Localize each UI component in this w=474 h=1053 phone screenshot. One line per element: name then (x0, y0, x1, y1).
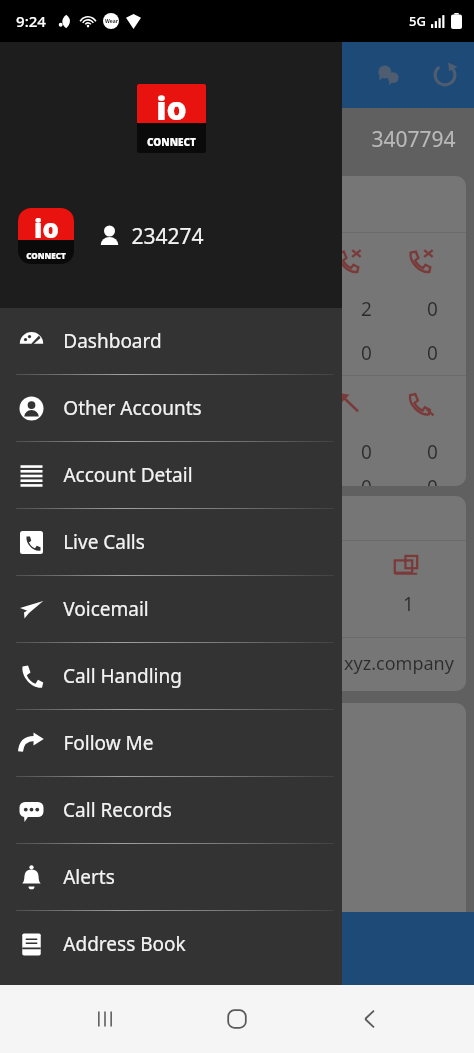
button[interactable]: Call Records (0, 777, 342, 843)
staticText: Wear (105, 18, 118, 25)
staticText: 1 (403, 591, 414, 617)
button[interactable]: Address Book (0, 911, 342, 977)
staticText: 0 (361, 474, 372, 486)
staticText: io (34, 210, 59, 245)
staticText: 5G (409, 12, 426, 30)
staticText: xyz.company (344, 651, 454, 676)
staticText: 234274 (131, 222, 204, 251)
staticText: CONNECT (147, 135, 196, 149)
staticText: Address Book (63, 931, 186, 957)
staticText: 3407794 (371, 125, 456, 154)
button[interactable]: Refresh (430, 60, 460, 90)
staticText: 0 (427, 439, 438, 465)
staticText: Voicemail (63, 596, 149, 622)
staticText: Other Accounts (63, 395, 202, 421)
button[interactable]: Alerts (306, 926, 352, 972)
button[interactable]: Live Calls (0, 509, 342, 575)
button[interactable]: Other Accounts (0, 375, 342, 441)
staticText: Live Calls (63, 529, 145, 555)
button[interactable]: Home (209, 991, 265, 1047)
staticText: CONNECT (26, 250, 66, 261)
staticText: io (156, 86, 187, 129)
button[interactable]: Back (342, 991, 398, 1047)
button[interactable]: Dashboard (0, 308, 342, 374)
staticText: 2 (361, 296, 372, 322)
button[interactable]: Follow Me (0, 710, 342, 776)
staticText: Account Detail (63, 462, 193, 488)
staticText: Call Handling (63, 663, 182, 689)
button[interactable]: Account Detail (0, 442, 342, 508)
staticText: 0 (427, 340, 438, 366)
staticText: Follow Me (63, 730, 154, 756)
staticText: 0 (361, 340, 372, 366)
button[interactable]: Recent apps (77, 991, 133, 1047)
staticText: 9:24 (16, 11, 46, 31)
staticText: 0 (427, 296, 438, 322)
staticText: 0 (427, 474, 438, 486)
staticText: Alerts (63, 864, 115, 890)
button[interactable]: Call Handling (0, 643, 342, 709)
staticText: Call Records (63, 797, 172, 823)
button[interactable]: Voicemail (0, 576, 342, 642)
button[interactable]: Alerts (0, 844, 342, 910)
button[interactable]: Chat (374, 60, 404, 90)
staticText: 0 (361, 439, 372, 465)
staticText: Dashboard (63, 328, 162, 354)
